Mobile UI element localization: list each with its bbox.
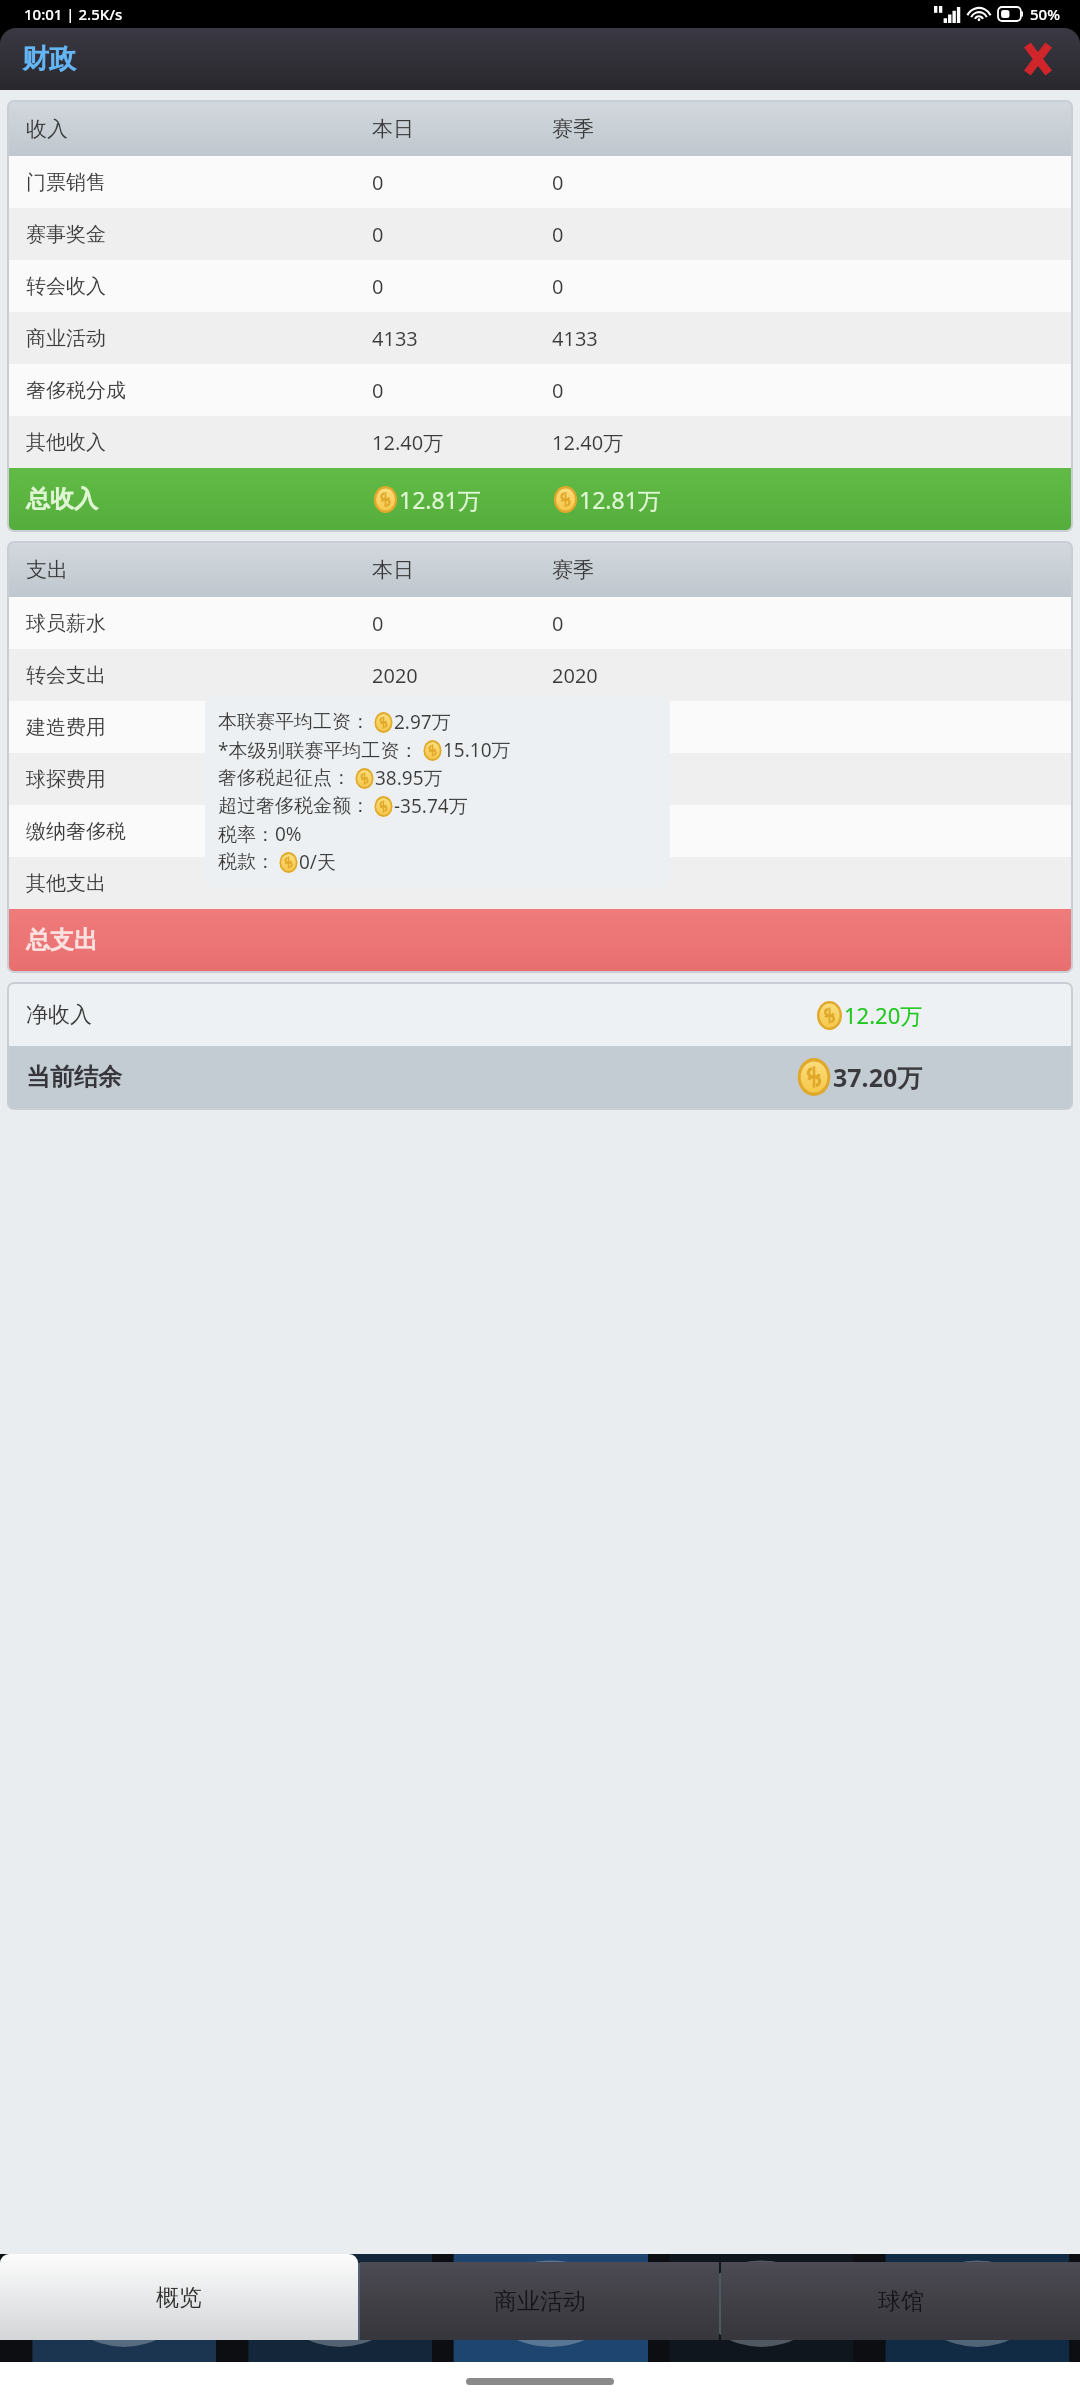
staticText: 税款： xyxy=(218,850,275,874)
staticText: 其他收入 xyxy=(26,430,201,455)
staticText: 2.97万 xyxy=(394,709,451,735)
staticText: 当前结余 xyxy=(26,1062,795,1092)
button[interactable]: 净收入 xyxy=(9,984,1071,1046)
button[interactable]: 球馆 xyxy=(721,2262,1080,2340)
button[interactable]: 当前结余 xyxy=(9,1046,1071,1108)
staticText: 本联赛平均工资： xyxy=(218,710,370,734)
staticText: 收入 xyxy=(26,116,166,142)
staticText: 0/天 xyxy=(299,849,336,875)
staticText: 总收入 xyxy=(26,484,201,514)
staticText: 本日 xyxy=(372,116,552,142)
staticText: 12.81万 xyxy=(399,484,481,515)
button[interactable]: 奢侈税分成 xyxy=(9,364,1071,416)
button[interactable]: 其他支出 xyxy=(9,857,1071,909)
staticText: 38.95万 xyxy=(375,765,443,791)
staticText: 净收入 xyxy=(26,1001,815,1029)
staticText: 球探费用 xyxy=(26,767,201,792)
staticText: 0 xyxy=(372,273,552,300)
staticText: 其他支出 xyxy=(26,871,201,896)
staticText: 球员薪水 xyxy=(26,611,201,636)
staticText: 赛事奖金 xyxy=(26,222,201,247)
button[interactable]: 建造费用 xyxy=(9,701,1071,753)
staticText: 0 xyxy=(372,377,552,404)
staticText: 转会支出 xyxy=(26,663,201,688)
staticText: 0 xyxy=(372,610,552,637)
staticText: 0 xyxy=(552,610,564,637)
staticText: 商业活动 xyxy=(26,326,201,351)
staticText: -35.74万 xyxy=(394,793,468,819)
staticText: 概览 xyxy=(156,2283,202,2312)
staticText: 转会收入 xyxy=(26,274,201,299)
staticText: 12.40万 xyxy=(552,429,624,456)
staticText: 门票销售 xyxy=(26,170,201,195)
button[interactable]: 转会收入 xyxy=(9,260,1071,312)
staticText: 12.40万 xyxy=(372,429,552,456)
staticText: 4133 xyxy=(552,325,598,352)
button[interactable]: Close xyxy=(1018,39,1058,79)
staticText: 缴纳奢侈税 xyxy=(26,819,201,844)
staticText: 50% xyxy=(1030,4,1060,24)
button[interactable]: 球员薪水 xyxy=(9,597,1071,649)
staticText: 支出 xyxy=(26,557,166,583)
button[interactable]: Info xyxy=(283,816,313,846)
staticText: 0 xyxy=(552,221,564,248)
button[interactable]: 转会支出 xyxy=(9,649,1071,701)
staticText: 15.10万 xyxy=(443,737,511,763)
staticText: 总支出 xyxy=(26,925,201,955)
staticText: 建造费用 xyxy=(26,715,201,740)
button[interactable]: 总收入 xyxy=(9,468,1071,530)
staticText: 0 xyxy=(552,377,564,404)
staticText: 奢侈税分成 xyxy=(26,378,201,403)
staticText: 财政 xyxy=(22,42,76,76)
staticText: 12.81万 xyxy=(579,484,661,515)
staticText: 37.20万 xyxy=(833,1060,923,1094)
staticText: *本级别联赛平均工资： xyxy=(218,737,419,763)
staticText: 0 xyxy=(372,221,552,248)
staticText: 超过奢侈税金额： xyxy=(218,794,370,818)
staticText: i xyxy=(295,818,301,845)
button[interactable]: 其他收入 xyxy=(9,416,1071,468)
button[interactable]: 球探费用 xyxy=(9,753,1071,805)
staticText: 10:01 | 2.5K/s xyxy=(24,4,123,24)
staticText: 4100 xyxy=(372,714,552,741)
staticText: 0 xyxy=(552,169,564,196)
staticText: 0 xyxy=(372,169,552,196)
button[interactable]: 商业活动 xyxy=(9,312,1071,364)
button[interactable]: 门票销售 xyxy=(9,156,1071,208)
staticText: 本日 xyxy=(372,557,552,583)
staticText: 4133 xyxy=(372,325,552,352)
staticText: 12.20万 xyxy=(844,1000,923,1030)
staticText: 商业活动 xyxy=(494,2287,586,2316)
staticText: 奢侈税起征点： xyxy=(218,766,351,790)
staticText: 税率：0% xyxy=(218,821,302,847)
staticText: 赛季 xyxy=(552,116,594,142)
button[interactable]: 缴纳奢侈税 xyxy=(9,805,1071,857)
staticText: 0 xyxy=(552,273,564,300)
button[interactable]: 赛事奖金 xyxy=(9,208,1071,260)
staticText: 球馆 xyxy=(878,2287,924,2316)
staticText: 2020 xyxy=(552,662,598,689)
button[interactable]: 概览 xyxy=(0,2254,358,2340)
staticText: 0 xyxy=(372,766,552,793)
button[interactable]: 商业活动 xyxy=(360,2262,719,2340)
button[interactable]: 总支出 xyxy=(9,909,1071,971)
staticText: 2020 xyxy=(372,662,552,689)
staticText: 赛季 xyxy=(552,557,594,583)
